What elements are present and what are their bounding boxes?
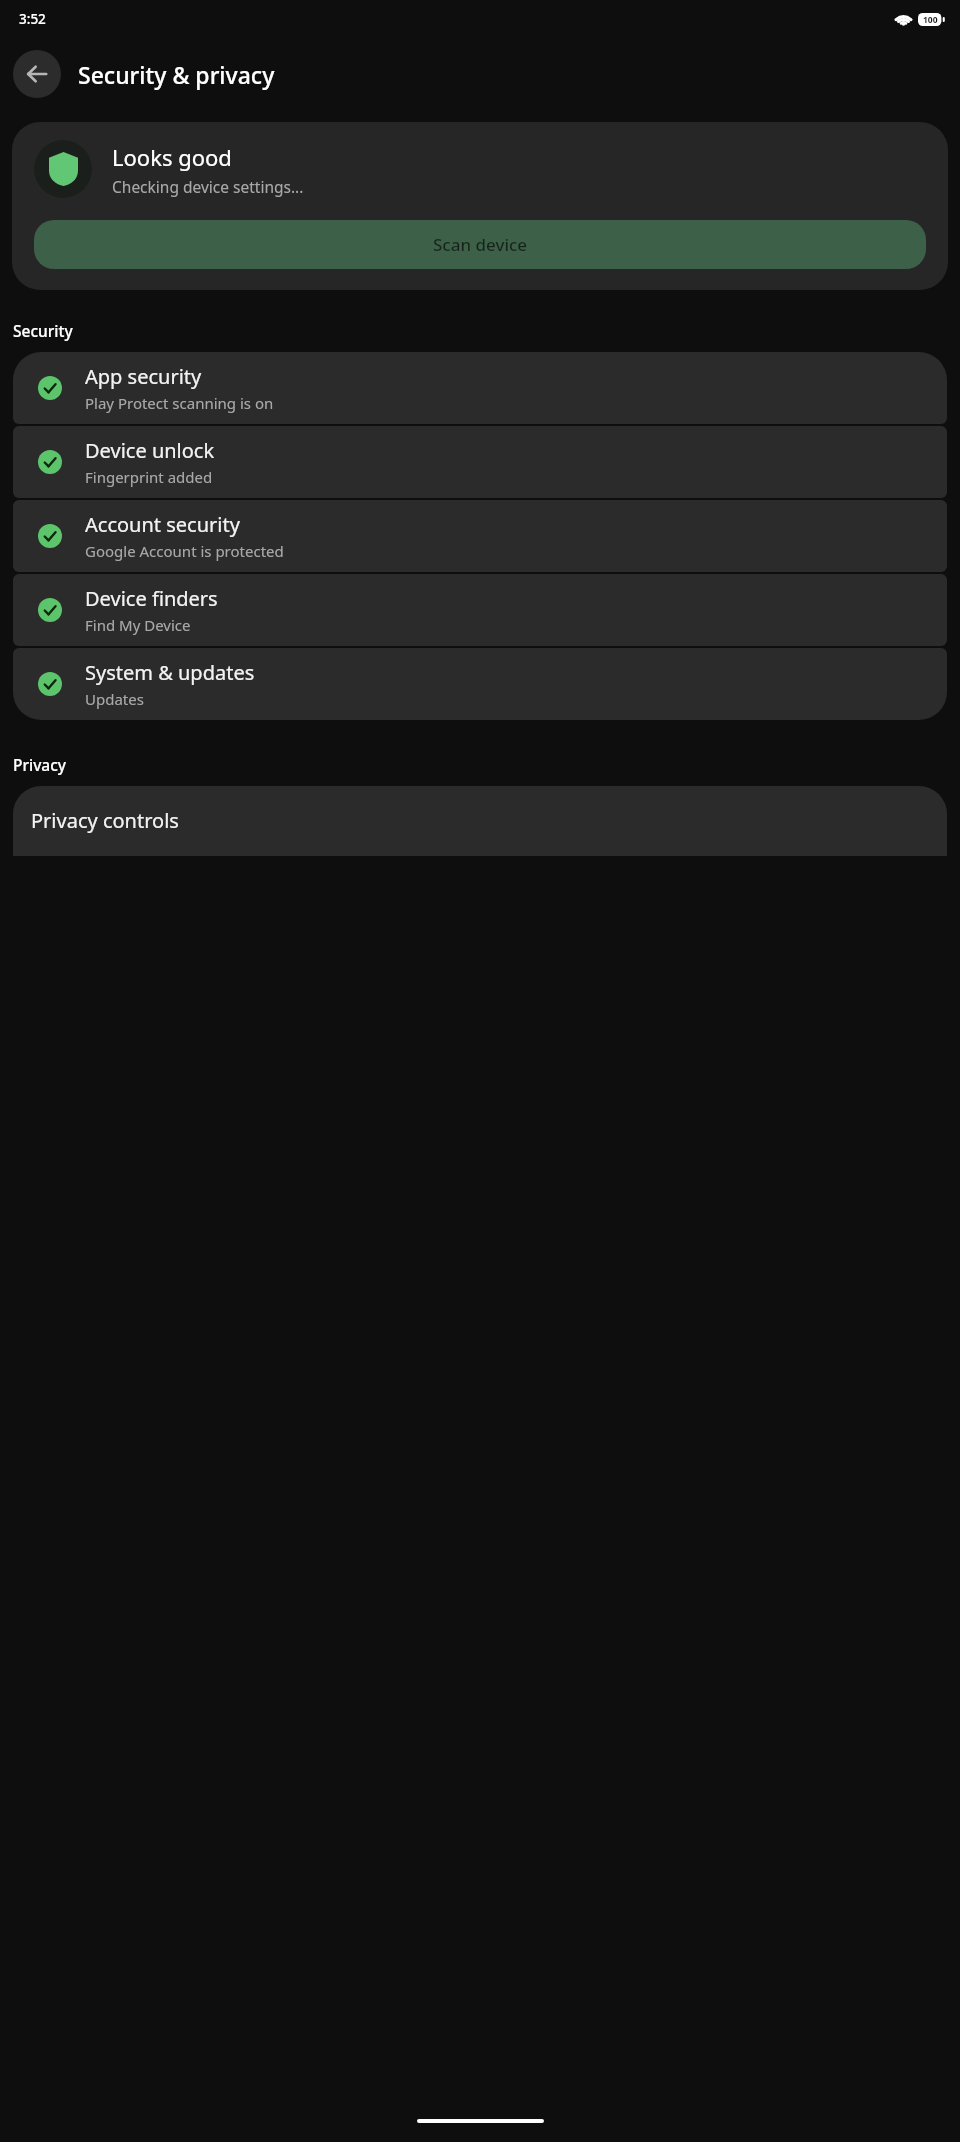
button[interactable]: Device finders bbox=[13, 574, 947, 646]
staticText: Looks good bbox=[112, 142, 232, 172]
staticText: Checking device settings... bbox=[112, 176, 304, 197]
button[interactable]: App security bbox=[13, 352, 947, 424]
staticText: Security & privacy bbox=[78, 59, 275, 90]
staticText: Scan device bbox=[433, 233, 528, 256]
staticText: Privacy bbox=[13, 754, 67, 775]
staticText: Fingerprint added bbox=[85, 467, 213, 487]
button[interactable]: System & updates bbox=[13, 648, 947, 720]
button[interactable]: Account security bbox=[13, 500, 947, 572]
button[interactable]: Device unlock bbox=[13, 426, 947, 498]
button[interactable]: Back bbox=[13, 50, 61, 98]
staticText: Device finders bbox=[85, 585, 218, 612]
button[interactable]: Scan device bbox=[34, 220, 926, 269]
staticText: System & updates bbox=[85, 659, 255, 686]
staticText: Security bbox=[13, 320, 73, 341]
staticText: Account security bbox=[85, 511, 240, 538]
staticText: Google Account is protected bbox=[85, 541, 284, 561]
staticText: Updates bbox=[85, 689, 144, 709]
staticText: Privacy controls bbox=[31, 807, 179, 834]
button[interactable]: Looks good bbox=[12, 122, 948, 290]
staticText: App security bbox=[85, 363, 202, 390]
button[interactable]: Privacy controls bbox=[13, 786, 947, 856]
staticText: 100 bbox=[923, 14, 938, 26]
staticText: Play Protect scanning is on bbox=[85, 393, 274, 413]
staticText: 3:52 bbox=[19, 10, 46, 28]
staticText: Find My Device bbox=[85, 615, 191, 635]
staticText: Device unlock bbox=[85, 437, 215, 464]
